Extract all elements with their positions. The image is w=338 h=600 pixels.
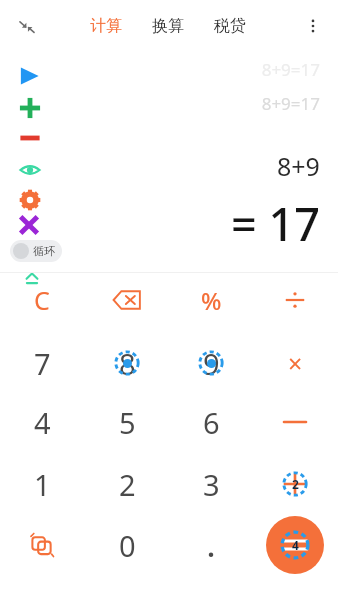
button[interactable]: 0 (91, 519, 163, 571)
staticText: 8 (119, 344, 136, 383)
button[interactable]: 税贷 (210, 12, 250, 40)
staticText: 8+9 (277, 149, 320, 183)
staticText: 税贷 (214, 16, 246, 36)
button[interactable]: Delete (91, 274, 163, 326)
button[interactable]: Add (18, 96, 42, 120)
button[interactable]: Minus (259, 396, 331, 448)
button[interactable]: Multi window (6, 519, 78, 571)
button[interactable]: 换算 (148, 12, 188, 40)
button[interactable]: Divide (259, 274, 331, 326)
button[interactable]: . (175, 519, 247, 571)
button[interactable]: 4 (6, 396, 78, 448)
button[interactable]: 5 (91, 396, 163, 448)
button[interactable]: Collapse (12, 12, 42, 42)
button[interactable]: × (259, 337, 331, 389)
button[interactable]: 计算 (86, 12, 126, 40)
staticText: 8+9=17 (261, 92, 320, 115)
button[interactable]: Equals (266, 516, 324, 574)
staticText: 4 (292, 537, 299, 553)
staticText: 换算 (152, 16, 184, 36)
button[interactable]: % (175, 274, 247, 326)
button[interactable]: 循环 (10, 240, 62, 262)
button[interactable]: Preview (18, 158, 42, 182)
button[interactable]: 8 (91, 337, 163, 389)
staticText: 1 (34, 465, 51, 504)
staticText: = 17 (231, 193, 320, 254)
staticText: 6 (203, 403, 220, 442)
staticText: 9 (203, 344, 220, 383)
staticText: % (201, 284, 222, 317)
button[interactable]: 3 (175, 458, 247, 510)
button[interactable]: Subtract (18, 126, 42, 150)
button[interactable]: Settings (18, 188, 42, 212)
staticText: × (288, 346, 303, 380)
button[interactable]: Plus (259, 458, 331, 510)
staticText: . (207, 526, 216, 565)
button[interactable]: More options (296, 9, 330, 43)
staticText: 7 (34, 344, 51, 383)
button[interactable]: 6 (175, 396, 247, 448)
button[interactable]: Play (18, 64, 42, 88)
button[interactable]: 2 (91, 458, 163, 510)
button[interactable]: 1 (6, 458, 78, 510)
button[interactable]: Multiply (16, 212, 42, 238)
staticText: 8+9=17 (261, 58, 320, 81)
button[interactable]: C (6, 274, 78, 326)
staticText: 循环 (33, 244, 55, 258)
staticText: 5 (119, 403, 136, 442)
staticText: 0 (119, 526, 136, 565)
staticText: C (34, 283, 50, 317)
staticText: 4 (34, 403, 51, 442)
staticText: 2 (119, 465, 136, 504)
button[interactable]: 7 (6, 337, 78, 389)
staticText: 3 (203, 465, 220, 504)
button[interactable]: 9 (175, 337, 247, 389)
staticText: 计算 (90, 16, 122, 36)
staticText: 2 (292, 476, 299, 492)
